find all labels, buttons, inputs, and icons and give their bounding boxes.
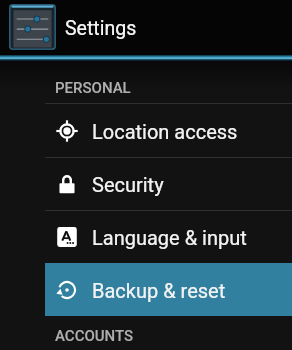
button[interactable]: Location access: [45, 104, 292, 157]
staticText: PERSONAL: [55, 79, 131, 97]
other: Settings app icon: [9, 4, 56, 50]
button[interactable]: Security: [45, 157, 292, 210]
button[interactable]: Settings app icon: [0, 0, 292, 55]
staticText: ACCOUNTS: [55, 327, 134, 345]
staticText: Security: [92, 173, 164, 196]
button[interactable]: Backup & reset: [45, 263, 292, 316]
staticText: Language & input: [92, 226, 247, 249]
staticText: Location access: [92, 120, 238, 143]
staticText: Backup & reset: [92, 279, 226, 302]
button[interactable]: Language & input: [45, 210, 292, 263]
staticText: Settings: [65, 17, 137, 40]
